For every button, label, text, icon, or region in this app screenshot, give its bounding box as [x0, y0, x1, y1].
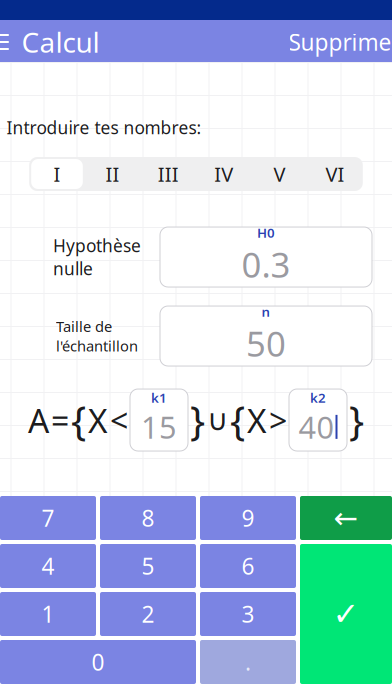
staticText: A [28, 397, 49, 443]
staticText: . [245, 647, 251, 677]
staticText: n [261, 303, 270, 320]
staticText: < [110, 398, 128, 442]
staticText: 4 [41, 551, 54, 581]
button[interactable]: Confirm [300, 544, 392, 684]
staticText: 15 [141, 406, 177, 447]
staticText: ∪ [207, 403, 228, 437]
button[interactable]: V [252, 157, 307, 191]
button[interactable]: Supprimer [274, 20, 392, 64]
staticText: > [269, 398, 287, 442]
button[interactable]: I [29, 157, 85, 191]
button[interactable]: 5 [100, 544, 196, 588]
button[interactable]: 2 [100, 592, 196, 636]
button[interactable]: 3 [200, 592, 296, 636]
button[interactable]: 4 [0, 544, 96, 588]
staticText: Introduire tes nombres: [6, 116, 201, 139]
button[interactable]: 0 [0, 640, 196, 684]
staticText: { [71, 393, 86, 447]
staticText: } [349, 393, 364, 447]
staticText: 5 [141, 551, 154, 581]
button[interactable]: 9 [200, 496, 296, 540]
staticText: 50 [246, 320, 286, 366]
staticText: II [106, 160, 120, 188]
staticText: 40 [298, 406, 334, 447]
button[interactable]: k1 [130, 389, 188, 451]
button[interactable]: 7 [0, 496, 96, 540]
staticText: 7 [41, 503, 54, 533]
staticText: III [158, 160, 179, 188]
staticText: VI [325, 160, 344, 188]
staticText: 0 [91, 647, 104, 677]
staticText: 3 [241, 599, 254, 629]
button[interactable]: n [160, 306, 372, 366]
staticText: X [88, 397, 108, 443]
staticText: Calcul [21, 23, 99, 61]
staticText: k1 [151, 389, 167, 406]
staticText: X [247, 397, 267, 443]
button[interactable]: 6 [200, 544, 296, 588]
button[interactable]: Menu [0, 20, 21, 64]
staticText: 0.3 [241, 241, 290, 287]
staticText: IV [214, 160, 233, 188]
button[interactable]: VI [307, 157, 363, 191]
staticText: 2 [141, 599, 154, 629]
button[interactable]: 8 [100, 496, 196, 540]
button[interactable]: H0 [160, 227, 372, 287]
staticText: = [51, 398, 69, 442]
button[interactable]: Delete [300, 496, 392, 540]
staticText: H0 [257, 224, 275, 241]
staticText: k2 [310, 389, 326, 406]
staticText: Hypothèse nulle [53, 234, 141, 280]
staticText: V [273, 160, 285, 188]
staticText: Taille de l'échantillon [56, 316, 138, 355]
button[interactable]: IV [196, 157, 252, 191]
staticText: 9 [241, 503, 254, 533]
button[interactable]: k2 [289, 389, 347, 451]
button[interactable]: . [200, 640, 296, 684]
button[interactable]: 1 [0, 592, 96, 636]
staticText: 1 [41, 599, 54, 629]
staticText: ✓ [332, 596, 359, 632]
button[interactable]: II [85, 157, 140, 191]
staticText: Supprimer [288, 27, 392, 57]
staticText: 8 [141, 503, 154, 533]
staticText: ← [333, 501, 358, 535]
button[interactable]: III [140, 157, 196, 191]
staticText: { [230, 393, 245, 447]
staticText: 6 [241, 551, 254, 581]
staticText: I [53, 160, 60, 188]
staticText: } [190, 393, 205, 447]
